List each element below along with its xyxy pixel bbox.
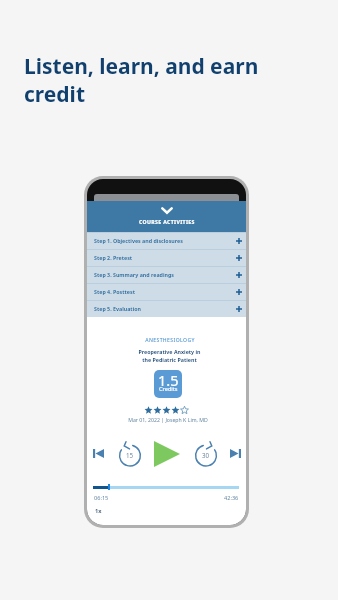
button[interactable]: COURSE ACTIVITIES [87, 201, 246, 232]
staticText: 30 [202, 451, 210, 459]
staticText: 1.5 [158, 370, 179, 390]
staticText: 06:15 [94, 494, 109, 502]
staticText: Step 2. Pretest [94, 254, 133, 261]
button[interactable]: Step 5. Evaluation [87, 300, 246, 317]
staticText: Preoperative Anxiety in the Pediatric Pa… [138, 348, 201, 363]
button[interactable] [144, 406, 189, 414]
button[interactable]: 1.5 [154, 370, 182, 398]
staticText: 1x [95, 507, 102, 515]
button[interactable]: Rewind 15 seconds [119, 444, 141, 466]
button[interactable]: Previous track [93, 449, 104, 458]
button[interactable]: Step 2. Pretest [87, 249, 246, 266]
button[interactable]: Next track [230, 449, 241, 458]
staticText: Step 3. Summary and readings [94, 271, 174, 278]
button[interactable]: Play [154, 441, 180, 467]
button[interactable]: Forward 30 seconds [195, 444, 217, 466]
staticText: Step 4. Posttest [94, 288, 135, 295]
staticText: Step 5. Evaluation [94, 305, 141, 312]
button[interactable]: Step 4. Posttest [87, 283, 246, 300]
staticText: ANESTHESIOLOGY [145, 337, 195, 344]
staticText: 15 [126, 451, 134, 459]
staticText: Credits [159, 385, 178, 393]
staticText: COURSE ACTIVITIES [139, 218, 195, 225]
staticText: Listen, learn, and earn credit [24, 52, 269, 108]
staticText: Step 1. Objectives and disclosures [94, 237, 183, 244]
staticText: Mar 01, 2022 | Joseph K Lim, MD [128, 416, 208, 423]
button[interactable]: 1x [95, 507, 102, 515]
button[interactable]: Step 3. Summary and readings [87, 266, 246, 283]
button[interactable]: Step 1. Objectives and disclosures [87, 232, 246, 249]
staticText: 42:36 [224, 494, 239, 502]
